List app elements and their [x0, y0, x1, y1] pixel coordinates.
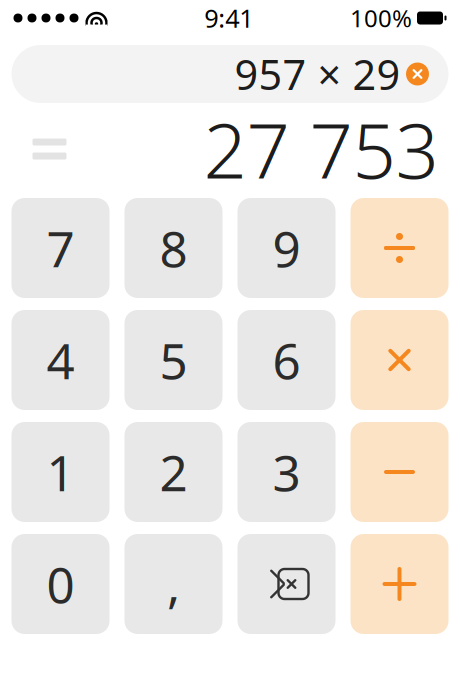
button[interactable]: 1	[11, 422, 109, 522]
staticText: 3	[272, 439, 300, 505]
button[interactable]: 2	[124, 422, 222, 522]
staticText: 9	[272, 215, 300, 281]
staticText: 9:41	[204, 1, 253, 35]
button[interactable]: 8	[124, 198, 222, 298]
staticText: 27 753	[203, 98, 438, 199]
button[interactable]: 6	[237, 310, 335, 410]
button[interactable]: Decimal separator	[124, 534, 222, 634]
staticText: 8	[159, 215, 187, 281]
button[interactable]: Add	[350, 534, 448, 634]
staticText: ,	[167, 551, 180, 617]
button[interactable]: 4	[11, 310, 109, 410]
button[interactable]: Clear	[400, 57, 434, 91]
button[interactable]: 9	[237, 198, 335, 298]
button[interactable]: 0	[11, 534, 109, 634]
staticText: 100%	[350, 2, 412, 34]
staticText: 0	[46, 551, 74, 617]
staticText: 2	[159, 439, 187, 505]
button[interactable]: Multiply	[350, 310, 448, 410]
staticText: 957 × 29	[234, 47, 400, 101]
button[interactable]: 5	[124, 310, 222, 410]
staticText: 6	[272, 327, 300, 393]
button[interactable]: Divide	[350, 198, 448, 298]
button[interactable]: 7	[11, 198, 109, 298]
button[interactable]: Subtract	[350, 422, 448, 522]
staticText: 7	[46, 215, 74, 281]
staticText: 5	[159, 327, 187, 393]
staticText: 4	[46, 327, 74, 393]
button[interactable]: Delete	[237, 534, 335, 634]
button[interactable]: 3	[237, 422, 335, 522]
staticText: 1	[46, 439, 74, 505]
